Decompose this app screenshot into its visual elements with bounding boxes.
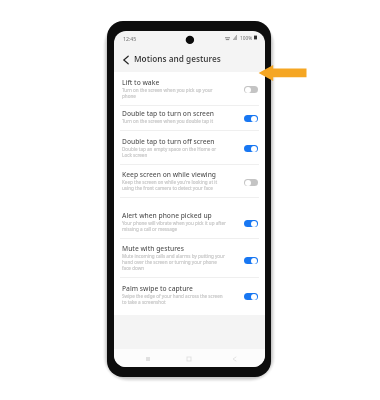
- staticText: Double tap an empty space on the Home or: [122, 146, 217, 152]
- staticText: Double tap to turn off screen: [122, 137, 215, 146]
- button[interactable]: Mute with gestures: [114, 242, 265, 279]
- staticText: Keep the screen on while you're looking …: [122, 179, 218, 185]
- button[interactable]: Back: [228, 353, 240, 365]
- button[interactable]: Navigate up: [119, 53, 133, 67]
- button[interactable]: Lift to wake: [114, 76, 265, 107]
- button[interactable]: Turn off: [244, 220, 258, 227]
- staticText: 100%: [240, 35, 253, 42]
- button[interactable]: Double tap to turn off screen: [114, 135, 265, 166]
- staticText: Swipe the edge of your hand across the s…: [122, 293, 223, 299]
- button[interactable]: Turn on: [244, 179, 258, 186]
- staticText: Keep screen on while viewing: [122, 170, 216, 179]
- staticText: Turn on the screen when you double tap i…: [122, 118, 214, 124]
- button[interactable]: Turn off: [244, 293, 258, 300]
- staticText: Alert when phone picked up: [122, 211, 212, 220]
- staticText: using the front camera to detect your fa…: [122, 185, 213, 191]
- staticText: Motions and gestures: [134, 53, 221, 64]
- staticText: face down: [122, 265, 145, 271]
- staticText: Mute with gestures: [122, 244, 184, 253]
- button[interactable]: Turn on: [244, 86, 258, 93]
- staticText: Lock screen: [122, 152, 148, 158]
- staticText: Mute incoming calls and alarms by puttin…: [122, 253, 225, 259]
- staticText: phone: [122, 93, 136, 99]
- staticText: missing a call or message: [122, 226, 178, 232]
- staticText: 12:45: [123, 35, 137, 42]
- button[interactable]: Double tap to turn on screen: [114, 107, 265, 131]
- button[interactable]: Palm swipe to capture: [114, 282, 265, 313]
- staticText: to take a screenshot: [122, 299, 166, 305]
- staticText: hand over the screen or turning your pho…: [122, 259, 217, 265]
- button[interactable]: Alert when phone picked up: [114, 209, 265, 240]
- staticText: Lift to wake: [122, 78, 160, 87]
- staticText: Double tap to turn on screen: [122, 109, 214, 118]
- button[interactable]: Turn off: [244, 145, 258, 152]
- button[interactable]: Turn off: [244, 115, 258, 122]
- button[interactable]: Home: [183, 353, 195, 365]
- button[interactable]: Keep screen on while viewing: [114, 168, 265, 199]
- staticText: Palm swipe to capture: [122, 284, 193, 293]
- button[interactable]: Recent apps: [142, 353, 154, 365]
- staticText: Your phone will vibrate when you pick it…: [122, 220, 226, 226]
- staticText: Turn on the screen when you pick up your: [122, 87, 213, 93]
- button[interactable]: Turn off: [244, 257, 258, 264]
